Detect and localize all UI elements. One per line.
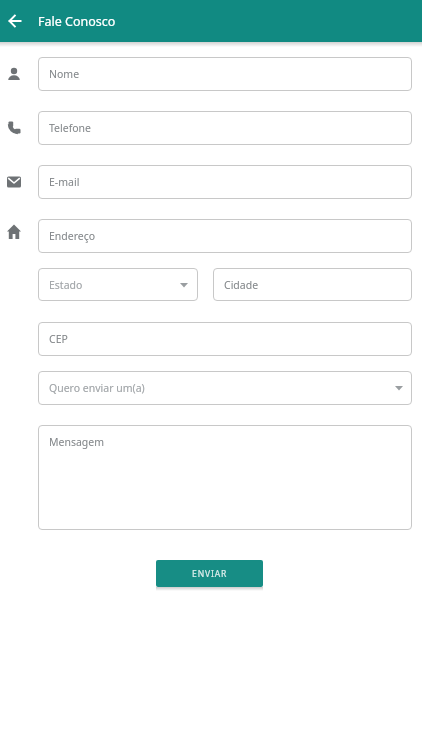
staticText: Estado <box>49 278 83 292</box>
staticText: Telefone <box>49 121 92 135</box>
button[interactable] <box>8 14 22 28</box>
button[interactable]: Quero enviar um(a) <box>38 371 412 405</box>
button[interactable]: ENVIAR <box>156 560 263 587</box>
button[interactable]: E-mail <box>38 165 412 199</box>
button[interactable]: Mensagem <box>38 425 412 530</box>
staticText: ENVIAR <box>192 568 228 580</box>
button[interactable]: Endereço <box>38 219 412 253</box>
staticText: CEP <box>49 332 68 346</box>
button[interactable]: Nome <box>38 57 412 91</box>
staticText: Quero enviar um(a) <box>49 381 145 395</box>
staticText: Nome <box>49 67 80 81</box>
button[interactable]: CEP <box>38 322 412 356</box>
button[interactable]: Cidade <box>213 268 412 301</box>
staticText: Mensagem <box>49 435 105 449</box>
staticText: Fale Conosco <box>38 13 116 30</box>
button[interactable]: Telefone <box>38 111 412 145</box>
staticText: Cidade <box>224 278 259 292</box>
staticText: E-mail <box>49 175 80 189</box>
staticText: Endereço <box>49 229 96 243</box>
button[interactable]: Estado <box>38 268 198 301</box>
